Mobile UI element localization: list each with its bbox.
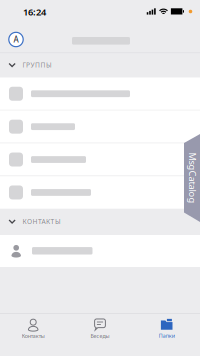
button[interactable]: Папки	[134, 314, 200, 344]
staticText: 16:24	[23, 6, 46, 18]
button[interactable]	[0, 235, 200, 267]
button[interactable]: КОНТАКТЫ	[0, 211, 110, 231]
staticText: КОНТАКТЫ	[23, 217, 61, 226]
button[interactable]: MsgCatalog	[0, 0, 200, 356]
staticText: Контакты	[22, 332, 45, 339]
button[interactable]	[0, 176, 200, 209]
staticText: Беседы	[90, 332, 109, 340]
staticText: MsgCatalog	[167, 172, 200, 184]
staticText: ГРУППЫ	[23, 61, 52, 69]
button[interactable]: Контакты	[0, 314, 66, 344]
staticText: A	[13, 34, 18, 45]
button[interactable]: Беседы	[67, 314, 133, 344]
staticText: Папки	[159, 332, 175, 339]
button[interactable]	[0, 77, 200, 110]
button[interactable]	[0, 110, 200, 143]
button[interactable]: Account	[4, 27, 28, 51]
button[interactable]: ГРУППЫ	[0, 55, 110, 75]
button[interactable]	[0, 143, 200, 176]
